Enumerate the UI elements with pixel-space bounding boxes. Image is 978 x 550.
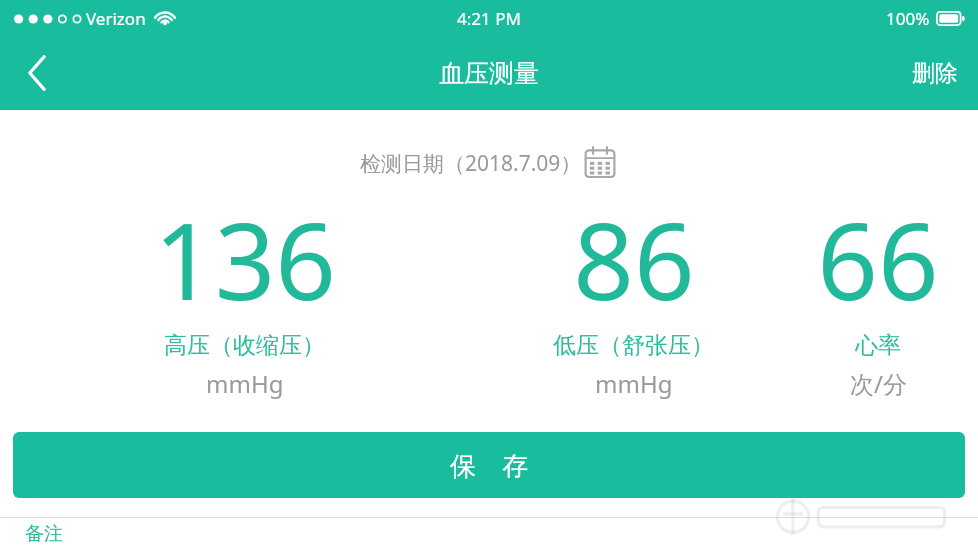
button[interactable]: Back <box>0 36 74 110</box>
staticText: 保 存 <box>450 447 528 483</box>
staticText: 高压（收缩压） <box>164 331 325 360</box>
staticText: 血压测量 <box>439 58 539 89</box>
staticText: mmHg <box>595 367 673 400</box>
staticText: mmHg <box>206 367 284 400</box>
staticText: 4:21 PM <box>457 7 521 30</box>
staticText: 删除 <box>912 59 958 88</box>
button[interactable]: 保 存 <box>13 432 965 498</box>
staticText: 低压（舒张压） <box>553 331 714 360</box>
staticText: 心率 <box>855 331 901 360</box>
staticText: 次/分 <box>850 367 907 400</box>
staticText: 备注 <box>25 522 63 546</box>
staticText: 86 <box>573 187 695 331</box>
staticText: 136 <box>154 187 336 331</box>
staticText: 100% <box>886 7 930 30</box>
staticText: 66 <box>817 187 939 331</box>
button[interactable]: 删除 <box>892 36 978 110</box>
staticText: 检测日期（2018.7.09） <box>360 149 582 178</box>
staticText: Verizon <box>86 7 146 30</box>
button[interactable]: 检测日期（2018.7.09） <box>360 145 618 181</box>
